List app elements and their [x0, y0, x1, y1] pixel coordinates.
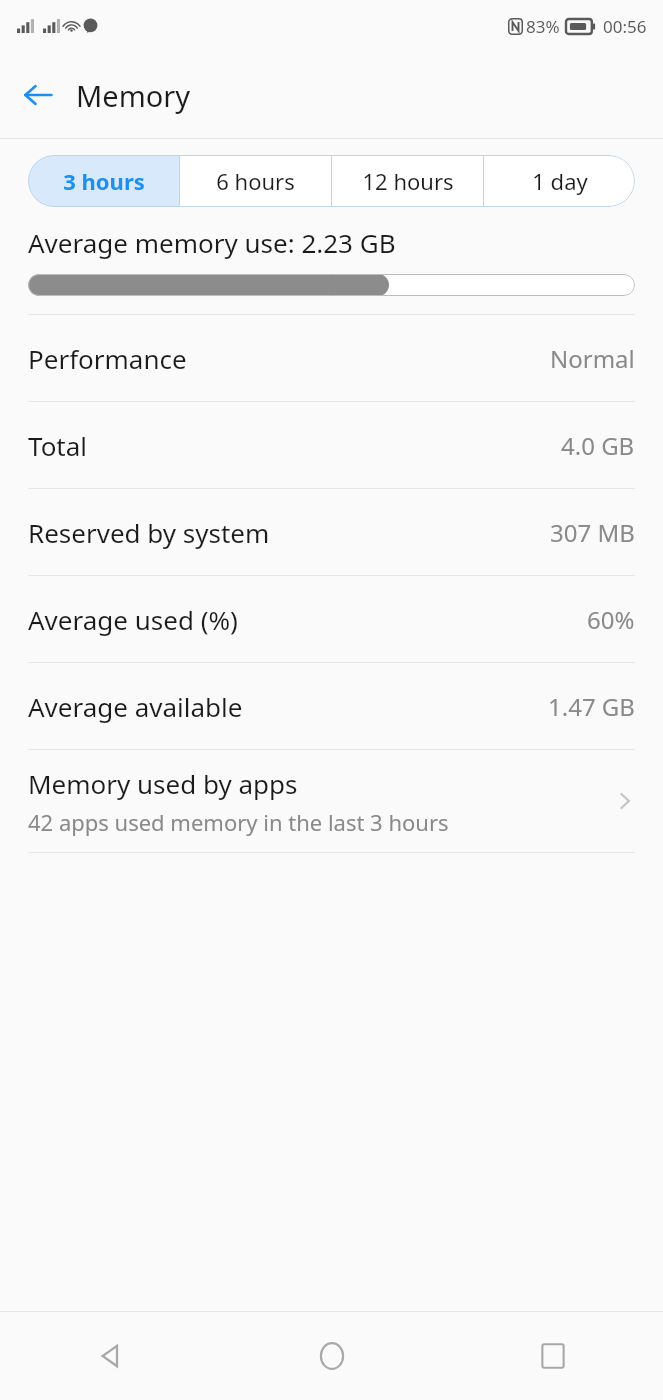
staticText: 6 hours	[216, 166, 295, 196]
button[interactable]: Memory used by apps	[0, 750, 663, 852]
button[interactable]: Back	[0, 1312, 221, 1400]
staticText: 60%	[587, 603, 635, 636]
staticText: Average used (%)	[28, 602, 238, 637]
button[interactable]: Home	[221, 1312, 442, 1400]
button[interactable]: 3 hours	[28, 155, 179, 207]
staticText: Performance	[28, 341, 187, 376]
button[interactable]: Back	[12, 69, 64, 121]
staticText: Average memory use: 2.23 GB	[28, 225, 396, 260]
staticText: 3 hours	[63, 166, 145, 196]
button[interactable]: Recent apps	[442, 1312, 663, 1400]
staticText: 307 MB	[550, 516, 635, 549]
staticText: 4.0 GB	[561, 429, 635, 462]
staticText: 1 day	[532, 166, 588, 196]
staticText: Memory	[76, 76, 191, 115]
staticText: 12 hours	[362, 166, 454, 196]
staticText: Average available	[28, 689, 243, 724]
staticText: Normal	[550, 342, 635, 375]
button[interactable]: Average used (%)	[0, 576, 663, 662]
staticText: Reserved by system	[28, 515, 270, 550]
staticText: 42 apps used memory in the last 3 hours	[28, 807, 449, 837]
button[interactable]: Reserved by system	[0, 489, 663, 575]
button[interactable]: 6 hours	[180, 155, 331, 207]
staticText: Memory used by apps	[28, 766, 298, 801]
staticText: 83%	[526, 15, 560, 38]
button[interactable]: 12 hours	[332, 155, 483, 207]
button[interactable]: 1 day	[484, 155, 635, 207]
staticText: 00:56	[603, 15, 647, 38]
button[interactable]: Performance	[0, 315, 663, 401]
staticText: Total	[28, 428, 88, 463]
staticText: 1.47 GB	[548, 690, 635, 723]
button[interactable]: Total	[0, 402, 663, 488]
button[interactable]: Average available	[0, 663, 663, 749]
